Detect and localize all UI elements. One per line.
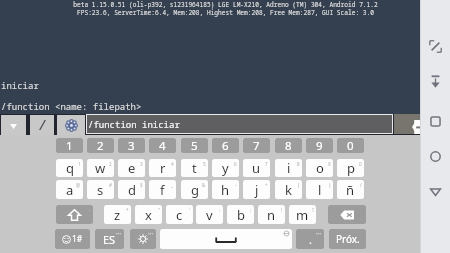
button[interactable]: Expand command list <box>1 115 26 135</box>
button[interactable]: j <box>243 180 270 199</box>
staticText: FPS:23.6, ServerTime:6.4, Mem:208, Highe… <box>77 8 374 16</box>
staticText: d <box>128 181 136 199</box>
staticText: b <box>237 206 245 224</box>
button[interactable]: Hide keyboard <box>424 70 446 92</box>
staticText: beta 1.15.0.51 (oli-p392, s1231964185) L… <box>73 0 378 8</box>
staticText: 7 <box>253 138 260 153</box>
staticText: _ <box>171 182 174 188</box>
button[interactable]: 8 <box>275 138 302 153</box>
staticText: /function <name: filepath> <box>1 100 142 112</box>
button[interactable]: ñ <box>337 180 364 199</box>
staticText: 8 <box>285 138 292 153</box>
button[interactable]: e <box>118 159 145 177</box>
staticText: z <box>114 206 121 224</box>
staticText: ) <box>329 182 331 188</box>
button[interactable]: z <box>104 205 131 224</box>
button[interactable]: Backspace <box>328 205 366 224</box>
button[interactable]: Recents <box>424 110 446 132</box>
staticText: 7 <box>265 161 268 167</box>
staticText: x <box>145 206 152 224</box>
button[interactable]: 6 <box>212 138 239 153</box>
staticText: 3 <box>140 161 143 167</box>
button[interactable]: Próx. <box>329 229 366 249</box>
staticText: 8 <box>297 161 300 167</box>
staticText: g <box>191 181 199 199</box>
staticText: p <box>347 159 355 177</box>
staticText: 6 <box>222 138 229 153</box>
staticText: 9 <box>316 138 323 153</box>
staticText: 3 <box>128 138 135 153</box>
button[interactable]: t <box>181 159 208 177</box>
staticText: " <box>158 207 160 213</box>
button[interactable]: c <box>166 205 193 224</box>
button[interactable]: r <box>149 159 176 177</box>
button[interactable]: Enter <box>394 114 420 134</box>
button[interactable]: k <box>275 180 302 199</box>
staticText: * <box>126 207 129 213</box>
button[interactable]: Space <box>160 229 292 249</box>
staticText: q <box>66 159 74 177</box>
button[interactable]: b <box>227 205 254 224</box>
staticText: Próx. <box>336 232 360 246</box>
button[interactable]: Emoji and symbols <box>55 229 90 249</box>
button[interactable]: g <box>181 180 208 199</box>
staticText: j <box>255 181 259 199</box>
button[interactable]: q <box>56 159 83 177</box>
staticText: k <box>285 181 292 199</box>
button[interactable]: v <box>196 205 223 224</box>
button[interactable]: y <box>212 159 239 177</box>
staticText: ' <box>189 207 191 213</box>
staticText: ! <box>281 207 283 213</box>
button[interactable]: x <box>135 205 162 224</box>
staticText: / <box>360 182 362 188</box>
staticText: 5 <box>203 161 206 167</box>
staticText: 1 <box>66 138 73 153</box>
button[interactable]: 1 <box>56 138 83 153</box>
staticText: : <box>219 207 221 213</box>
button[interactable]: f <box>149 180 176 199</box>
staticText: /function iniciar <box>88 118 180 130</box>
button[interactable]: /function iniciar <box>87 115 392 133</box>
staticText: v <box>206 206 213 224</box>
staticText: t <box>192 159 197 177</box>
staticText: ••• <box>116 231 122 237</box>
staticText: m <box>296 206 309 224</box>
button[interactable]: 3 <box>118 138 145 153</box>
staticText: 0 <box>359 161 362 167</box>
button[interactable]: p <box>337 159 364 177</box>
button[interactable]: s <box>87 180 114 199</box>
button[interactable]: Home <box>424 145 446 167</box>
button[interactable]: Shift <box>56 205 93 224</box>
button[interactable]: l <box>306 180 333 199</box>
button[interactable]: Back <box>424 180 446 202</box>
staticText: h <box>221 181 230 199</box>
button[interactable]: a <box>56 180 83 199</box>
button[interactable]: u <box>243 159 270 177</box>
button[interactable]: 7 <box>243 138 270 153</box>
button[interactable]: 5 <box>181 138 208 153</box>
button[interactable]: i <box>275 159 302 177</box>
button[interactable]: 4 <box>149 138 176 153</box>
staticText: 2 <box>97 138 104 153</box>
button[interactable]: Keyboard settings <box>130 229 156 249</box>
button[interactable]: ES <box>95 229 124 249</box>
staticText: e <box>128 159 136 177</box>
button[interactable]: h <box>212 180 239 199</box>
button[interactable]: Settings <box>57 115 85 135</box>
button[interactable]: o <box>306 159 333 177</box>
button[interactable]: m <box>289 205 316 224</box>
staticText: c <box>176 206 183 224</box>
button[interactable]: 0 <box>337 138 364 153</box>
button[interactable]: d <box>118 180 145 199</box>
button[interactable]: . <box>296 229 324 249</box>
staticText: ( <box>298 182 300 188</box>
button[interactable]: Slash <box>30 115 54 135</box>
button[interactable]: w <box>87 159 114 177</box>
staticText: s <box>97 181 104 199</box>
button[interactable]: n <box>258 205 285 224</box>
button[interactable]: 2 <box>87 138 114 153</box>
staticText: 4 <box>159 138 166 153</box>
button[interactable]: Expand <box>424 35 446 57</box>
staticText: @ <box>76 182 81 188</box>
button[interactable]: 9 <box>306 138 333 153</box>
